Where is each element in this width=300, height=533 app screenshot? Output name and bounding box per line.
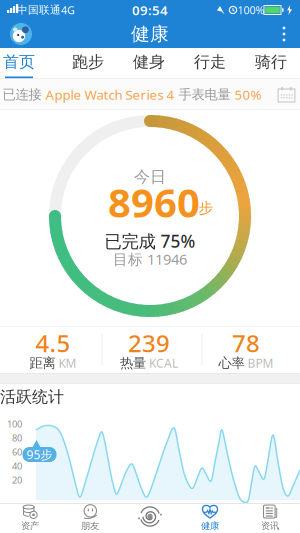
staticText: 手表电量 (178, 86, 230, 103)
staticText: 首页 (3, 52, 35, 72)
staticText: 4G (61, 3, 75, 17)
button[interactable]: 健身 (121, 46, 177, 77)
staticText: 资讯 (261, 520, 279, 532)
staticText: 资产 (21, 520, 39, 532)
staticText: 80 (12, 432, 22, 444)
staticText: 活跃统计 (0, 387, 64, 407)
staticText: 今日 (134, 167, 166, 187)
staticText: 热量 (120, 355, 146, 371)
staticText: 跑步 (72, 52, 104, 72)
staticText: 骑行 (255, 52, 287, 72)
staticText: 40 (12, 460, 22, 472)
staticText: 朋友 (81, 520, 99, 532)
button[interactable]: 首页 (0, 46, 47, 77)
button[interactable] (276, 25, 292, 43)
staticText: 4.5 (35, 327, 70, 359)
staticText: 100 (7, 418, 22, 430)
staticText: 行走 (194, 52, 226, 72)
button[interactable]: 健康 (188, 503, 232, 532)
staticText: 50% (234, 86, 261, 103)
button[interactable]: 资讯 (248, 503, 292, 532)
staticText: 78 (232, 327, 260, 359)
staticText: 8960 (108, 175, 200, 228)
button[interactable]: 骑行 (243, 46, 299, 77)
staticText: KM (58, 355, 76, 371)
staticText: 已连接 (2, 86, 41, 103)
staticText: 心率 (218, 355, 244, 371)
staticText: 95步 (26, 446, 52, 462)
staticText: 60 (12, 446, 22, 458)
staticText: 20 (12, 474, 22, 486)
staticText: 目标 11946 (113, 249, 187, 269)
button[interactable]: 已连接 (0, 79, 300, 110)
staticText: 步 (198, 199, 213, 217)
staticText: 健身 (133, 52, 165, 72)
staticText: Apple Watch Series 4 (45, 86, 174, 103)
staticText: 100% (237, 3, 264, 17)
staticText: 239 (128, 327, 170, 359)
staticText: 健康 (201, 520, 219, 532)
button[interactable]: 跑步 (60, 46, 116, 77)
staticText: 距离 (29, 355, 55, 371)
staticText: 中国联通 (17, 3, 61, 16)
button[interactable]: 朋友 (68, 503, 112, 532)
staticText: BPM (247, 355, 273, 371)
button[interactable] (138, 505, 162, 529)
button[interactable] (10, 23, 32, 45)
button[interactable]: 资产 (8, 503, 52, 532)
staticText: 09:54 (132, 1, 168, 19)
button[interactable]: 行走 (182, 46, 238, 77)
staticText: KCAL (149, 355, 178, 371)
staticText: 已完成 75% (104, 229, 195, 252)
staticText: 健康 (131, 22, 169, 45)
